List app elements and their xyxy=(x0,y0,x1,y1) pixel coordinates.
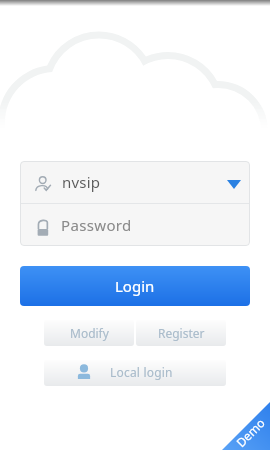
staticText: Register xyxy=(158,325,205,341)
button[interactable]: Show account list xyxy=(216,161,250,203)
staticText: Login xyxy=(115,276,155,296)
staticText: Modify xyxy=(70,325,109,341)
staticText: Local login xyxy=(110,364,173,380)
button[interactable]: Modify xyxy=(44,320,134,346)
staticText: nvsip xyxy=(62,172,101,192)
staticText: Demo xyxy=(232,414,269,450)
button[interactable]: Demo xyxy=(222,402,270,450)
staticText: Password xyxy=(61,215,132,235)
button[interactable]: Register xyxy=(136,320,226,346)
button[interactable]: nvsip xyxy=(20,161,250,203)
button[interactable]: Local login xyxy=(44,360,226,386)
button[interactable]: Password xyxy=(20,204,250,246)
button[interactable]: Login xyxy=(20,266,250,306)
